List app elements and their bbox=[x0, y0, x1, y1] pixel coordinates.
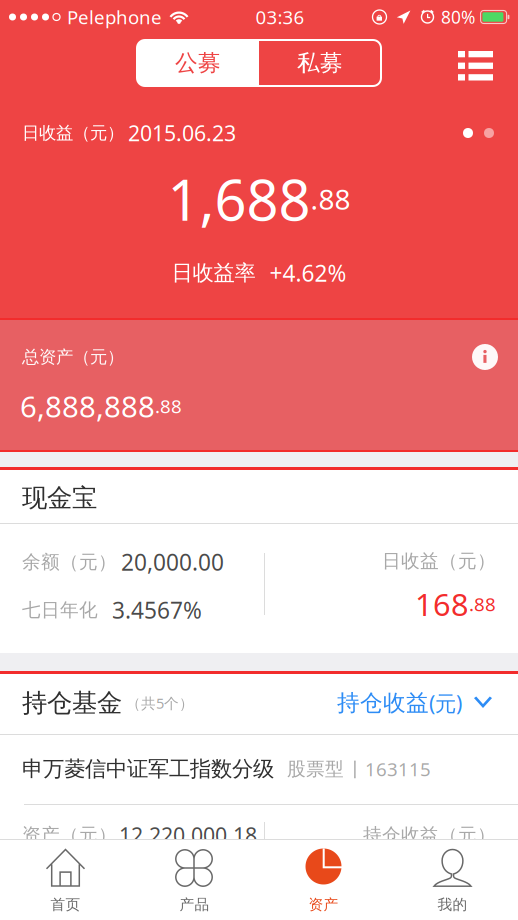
staticText: 12,220,000.18 bbox=[119, 821, 257, 849]
staticText: .88 bbox=[469, 592, 496, 616]
staticText: 日收益（元） bbox=[22, 122, 124, 144]
staticText: 日收益率 bbox=[171, 260, 255, 286]
staticText: (元) bbox=[429, 689, 462, 717]
button[interactable]: 私募 bbox=[259, 40, 381, 86]
staticText: 现金宝 bbox=[22, 482, 97, 513]
staticText: 丨163115 bbox=[346, 757, 431, 781]
staticText: 80% bbox=[441, 5, 475, 28]
staticText: 日收益（元） bbox=[382, 549, 496, 572]
staticText: 6,888,888 bbox=[20, 386, 155, 425]
button[interactable]: 持仓收益 bbox=[0, 674, 518, 718]
staticText: +4.62% bbox=[269, 258, 346, 288]
staticText: 资产（元） bbox=[22, 823, 117, 846]
button[interactable]: 产品 bbox=[130, 839, 259, 920]
button[interactable]: 我的 bbox=[388, 839, 517, 920]
staticText: （共5个） bbox=[126, 693, 194, 713]
staticText: 168 bbox=[415, 584, 469, 624]
staticText: 2015.06.23 bbox=[128, 119, 236, 147]
staticText: 我的 bbox=[437, 895, 467, 913]
button[interactable]: Info bbox=[472, 344, 498, 370]
staticText: 持仓基金 bbox=[22, 687, 122, 718]
staticText: 3.4567% bbox=[112, 595, 202, 625]
button[interactable]: 首页 bbox=[1, 839, 130, 920]
staticText: 公募 bbox=[175, 49, 221, 77]
staticText: 产品 bbox=[179, 895, 209, 913]
staticText: 持仓收益 bbox=[337, 689, 429, 717]
button[interactable]: 资产 bbox=[259, 839, 388, 920]
staticText: 首页 bbox=[50, 895, 80, 913]
staticText: 私募 bbox=[297, 49, 343, 77]
button[interactable]: 公募 bbox=[137, 40, 259, 86]
staticText: .88 bbox=[155, 394, 182, 418]
staticText: 总资产（元） bbox=[22, 346, 124, 368]
staticText: 申万菱信中证军工指数分级 bbox=[22, 756, 274, 782]
staticText: 资产 bbox=[308, 895, 338, 913]
staticText: 20,000.00 bbox=[121, 547, 224, 577]
staticText: .88 bbox=[310, 180, 350, 218]
staticText: 七日年化 bbox=[22, 598, 98, 621]
staticText: 1,688 bbox=[167, 162, 310, 236]
staticText: 余额（元） bbox=[22, 550, 117, 573]
staticText: 03:36 bbox=[255, 5, 304, 29]
button[interactable]: Menu bbox=[0, 34, 493, 80]
staticText: 持仓收益（元） bbox=[363, 823, 496, 846]
staticText: Pelephone bbox=[67, 5, 162, 29]
staticText: 股票型 bbox=[287, 757, 344, 780]
